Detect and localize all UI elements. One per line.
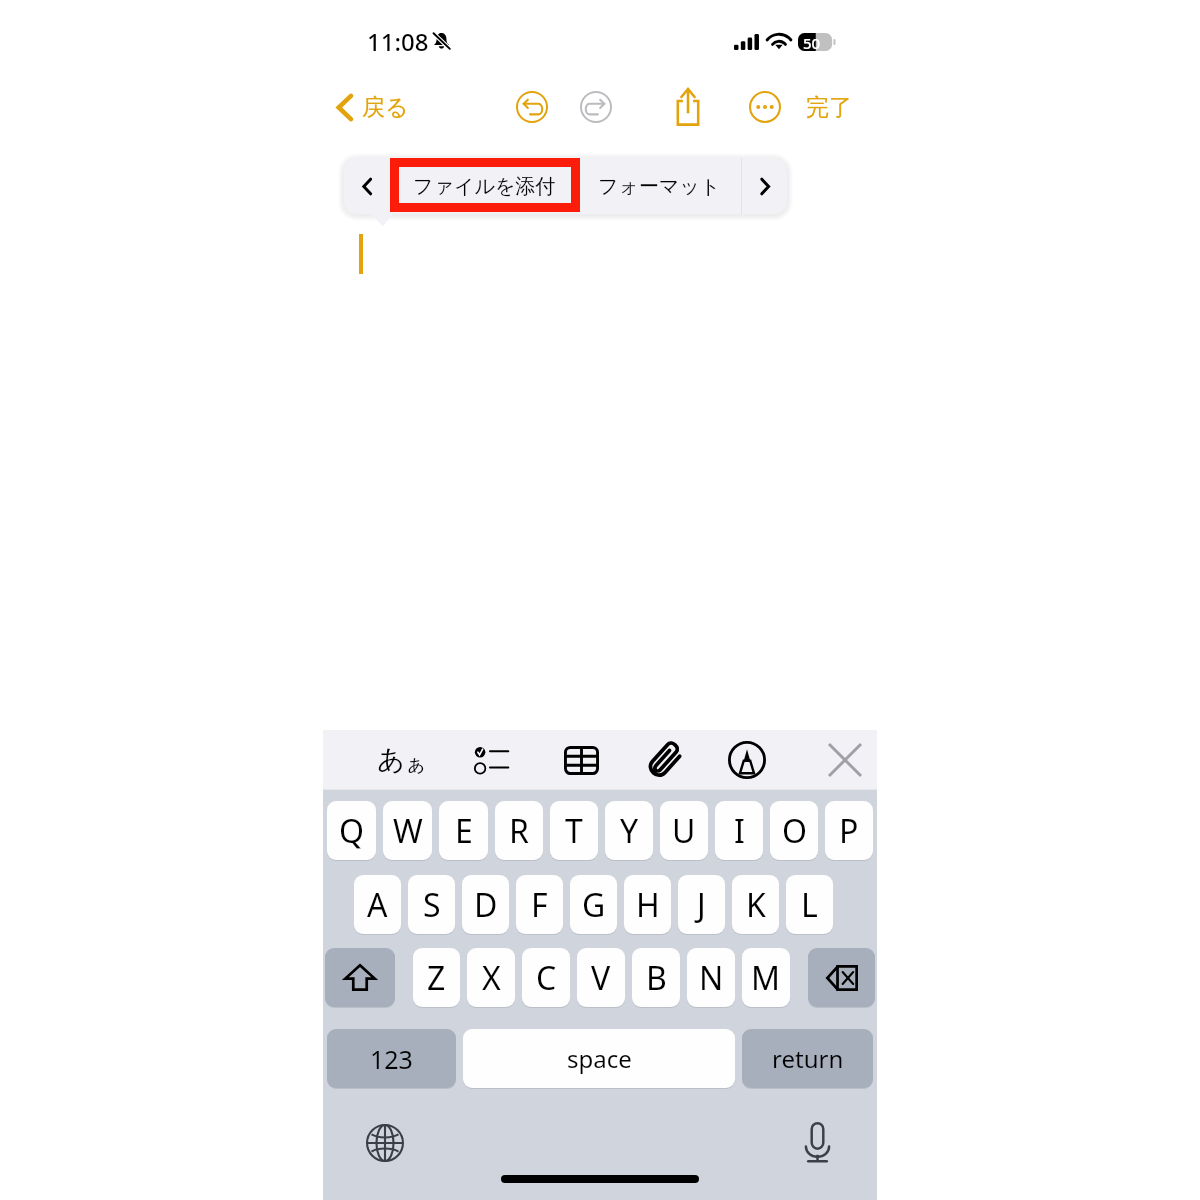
- button[interactable]: U: [660, 801, 708, 860]
- button[interactable]: フォーマット: [578, 158, 741, 214]
- button[interactable]: ファイルを添付: [390, 158, 578, 214]
- staticText: I: [734, 809, 745, 853]
- staticText: V: [591, 956, 611, 1000]
- button[interactable]: Share: [664, 83, 712, 131]
- button[interactable]: Markup: [719, 732, 775, 788]
- staticText: W: [393, 809, 423, 853]
- staticText: ぁ: [405, 750, 427, 776]
- button[interactable]: R: [495, 801, 543, 860]
- button[interactable]: Redo: [572, 83, 620, 131]
- button[interactable]: S: [408, 875, 455, 934]
- staticText: 11:08: [367, 25, 429, 58]
- button[interactable]: Dictate: [789, 1114, 845, 1170]
- button[interactable]: Q: [327, 801, 376, 860]
- staticText: H: [636, 883, 660, 927]
- button[interactable]: W: [383, 801, 432, 860]
- staticText: R: [509, 809, 529, 853]
- button[interactable]: V: [577, 948, 625, 1007]
- button[interactable]: I: [715, 801, 763, 860]
- button[interactable]: Shift: [325, 948, 395, 1007]
- button[interactable]: G: [570, 875, 617, 934]
- staticText: F: [531, 883, 548, 927]
- button[interactable]: More: [741, 83, 789, 131]
- button[interactable]: A: [354, 875, 401, 934]
- button[interactable]: return: [742, 1029, 873, 1088]
- button[interactable]: Backspace: [808, 948, 875, 1007]
- button[interactable]: N: [687, 948, 735, 1007]
- button[interactable]: D: [462, 875, 509, 934]
- staticText: C: [536, 956, 557, 1000]
- staticText: N: [699, 956, 724, 1000]
- button[interactable]: K: [732, 875, 779, 934]
- staticText: 完了: [806, 93, 852, 122]
- button[interactable]: H: [624, 875, 671, 934]
- button[interactable]: Y: [605, 801, 653, 860]
- staticText: G: [582, 883, 606, 927]
- staticText: A: [367, 883, 388, 927]
- staticText: X: [482, 956, 501, 1000]
- staticText: Y: [620, 809, 639, 853]
- button[interactable]: 戻る: [330, 88, 415, 127]
- staticText: 123: [370, 1042, 413, 1076]
- staticText: Z: [427, 956, 446, 1000]
- button[interactable]: Previous: [344, 158, 390, 214]
- button[interactable]: Undo: [508, 83, 556, 131]
- button[interactable]: X: [467, 948, 515, 1007]
- button[interactable]: Next: [742, 158, 787, 214]
- staticText: B: [646, 956, 667, 1000]
- button[interactable]: Font size: [374, 732, 430, 788]
- staticText: space: [567, 1042, 632, 1075]
- button[interactable]: Checklist: [464, 732, 520, 788]
- button[interactable]: Table: [553, 732, 609, 788]
- button[interactable]: O: [770, 801, 818, 860]
- staticText: K: [746, 883, 766, 927]
- staticText: Q: [339, 809, 364, 853]
- button[interactable]: E: [439, 801, 488, 860]
- button[interactable]: Z: [413, 948, 460, 1007]
- staticText: M: [751, 956, 781, 1000]
- button[interactable]: F: [516, 875, 563, 934]
- staticText: E: [455, 809, 473, 853]
- button[interactable]: C: [522, 948, 570, 1007]
- button[interactable]: Close keyboard: [817, 732, 873, 788]
- button[interactable]: space: [463, 1029, 735, 1088]
- button[interactable]: J: [678, 875, 725, 934]
- staticText: O: [782, 809, 807, 853]
- staticText: 戻る: [362, 93, 409, 122]
- staticText: J: [697, 883, 706, 927]
- staticText: U: [672, 809, 696, 853]
- staticText: 50: [803, 33, 821, 51]
- staticText: あ: [377, 743, 405, 777]
- staticText: フォーマット: [598, 174, 721, 199]
- staticText: ファイルを添付: [413, 174, 556, 199]
- button[interactable]: Attach file: [637, 732, 693, 788]
- staticText: T: [565, 809, 583, 853]
- staticText: L: [801, 883, 818, 927]
- button[interactable]: M: [742, 948, 790, 1007]
- staticText: S: [423, 883, 441, 927]
- staticText: return: [772, 1042, 844, 1075]
- staticText: P: [839, 809, 859, 853]
- button[interactable]: L: [786, 875, 833, 934]
- button[interactable]: Switch language: [357, 1115, 413, 1171]
- button[interactable]: P: [825, 801, 873, 860]
- button[interactable]: T: [550, 801, 598, 860]
- button[interactable]: 123: [327, 1029, 456, 1088]
- button[interactable]: 完了: [800, 87, 858, 128]
- button[interactable]: B: [632, 948, 680, 1007]
- staticText: D: [474, 883, 498, 927]
